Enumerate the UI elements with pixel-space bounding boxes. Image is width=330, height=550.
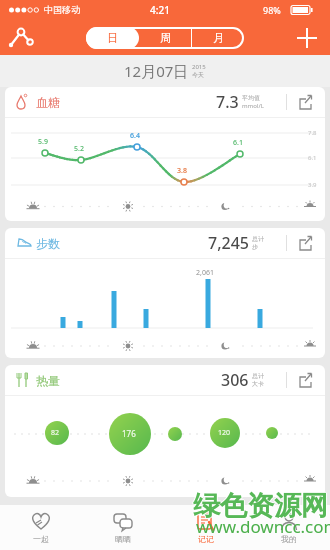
button[interactable]: 日 — [86, 27, 139, 49]
staticText: 306 — [221, 369, 249, 391]
staticText: 绿色资源网 — [192, 489, 327, 523]
staticText: 3.8 — [177, 166, 187, 176]
button[interactable] — [297, 234, 315, 252]
staticText: 82 — [51, 428, 60, 438]
staticText: 98% — [263, 4, 281, 16]
staticText: 总计 — [252, 235, 264, 243]
staticText: 平均值 — [242, 94, 260, 102]
staticText: 记记 — [198, 534, 214, 544]
staticText: 周 — [160, 31, 171, 45]
staticText: 大卡 — [252, 380, 264, 388]
staticText: 4:21 — [150, 3, 170, 17]
staticText: 绿色资源网 — [193, 489, 328, 523]
staticText: www.downcc.com — [196, 515, 330, 538]
staticText: 月 — [213, 31, 224, 45]
staticText: 3.9 — [308, 181, 317, 189]
staticText: 绿色资源网 — [193, 490, 328, 524]
staticText: 7.8 — [308, 129, 317, 137]
staticText: 绿色资源网 — [194, 489, 329, 523]
staticText: 今天 — [192, 71, 204, 79]
staticText: 步 — [252, 243, 258, 251]
button[interactable]: 记记 — [164, 505, 247, 550]
staticText: 总计 — [252, 372, 264, 380]
staticText: 6.4 — [130, 131, 140, 141]
staticText: 日 — [107, 31, 118, 45]
button[interactable] — [296, 27, 318, 49]
staticText: 5.2 — [74, 144, 84, 154]
staticText: mmol/L — [242, 102, 264, 110]
staticText: 步数 — [36, 236, 60, 251]
staticText: 热量 — [36, 373, 60, 388]
button[interactable]: 周 — [139, 27, 191, 49]
staticText: 晒晒 — [115, 534, 131, 544]
staticText: 2015 — [192, 63, 206, 71]
staticText: 6.1 — [308, 154, 317, 162]
button[interactable] — [297, 371, 315, 389]
staticText: 12月07日 — [124, 61, 189, 81]
button[interactable]: 晒晒 — [82, 505, 164, 550]
button[interactable]: 我的 — [247, 505, 330, 550]
staticText: 7,245 — [208, 232, 249, 254]
staticText: 176 — [122, 428, 136, 439]
button[interactable]: 月 — [192, 27, 244, 49]
staticText: 血糖 — [36, 95, 60, 110]
button[interactable]: 一起 — [0, 505, 82, 550]
staticText: 6.1 — [233, 138, 243, 148]
staticText: 2,061 — [196, 268, 214, 278]
staticText: 我的 — [281, 534, 297, 544]
staticText: 5.9 — [38, 137, 48, 147]
staticText: 绿色资源网 — [193, 488, 328, 522]
staticText: 120 — [218, 428, 231, 438]
staticText: 中国移动 — [44, 4, 80, 15]
button[interactable] — [297, 93, 315, 111]
staticText: 一起 — [33, 534, 49, 544]
staticText: 7.3 — [216, 91, 239, 113]
